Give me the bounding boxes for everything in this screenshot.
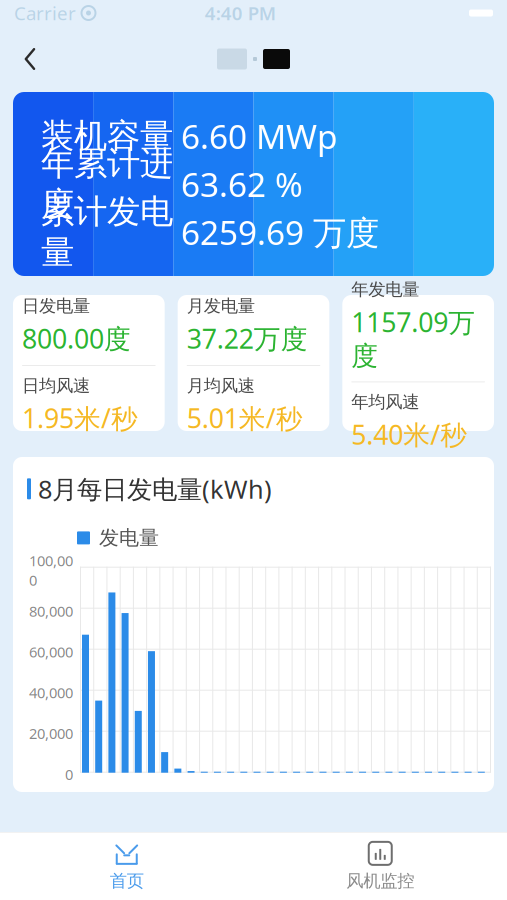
staticText: 100,000 xyxy=(29,551,73,590)
staticText: 1157.09万度 xyxy=(351,304,475,372)
staticText: 80,000 xyxy=(29,601,73,621)
staticText: 6259.69 万度 xyxy=(181,210,379,254)
staticText: 40,000 xyxy=(29,683,73,702)
staticText: 60,000 xyxy=(29,642,73,662)
staticText: 风机监控 xyxy=(346,870,414,892)
staticText: 20,000 xyxy=(29,724,73,743)
staticText: 发电量 xyxy=(99,526,159,550)
button[interactable]: 风机监控 xyxy=(253,832,507,900)
button[interactable]: 月发电量 xyxy=(178,295,329,431)
staticText: 累计发电量 xyxy=(41,191,173,273)
staticText: 年发电量 xyxy=(351,279,419,300)
staticText: 5.01米/秒 xyxy=(187,400,303,436)
staticText: 首页 xyxy=(110,870,144,892)
staticText: 1.95米/秒 xyxy=(22,400,138,436)
staticText: Carrier xyxy=(14,1,76,25)
staticText: 日均风速 xyxy=(22,375,90,396)
staticText: 8月每日发电量(kWh) xyxy=(38,472,272,506)
staticText: 4:40 PM xyxy=(205,1,276,25)
staticText: 800.00度 xyxy=(22,321,131,356)
staticText: 月发电量 xyxy=(187,295,255,317)
staticText: 37.22万度 xyxy=(187,321,308,356)
staticText: 月均风速 xyxy=(187,375,255,396)
button[interactable]: 日发电量 xyxy=(13,295,165,431)
button[interactable]: Back xyxy=(8,37,52,81)
button[interactable]: 首页 xyxy=(0,832,253,900)
staticText: 日发电量 xyxy=(22,295,90,317)
button[interactable]: 年发电量 xyxy=(342,295,494,431)
staticText: 0 xyxy=(65,764,73,784)
staticText: 装机容量 xyxy=(41,115,173,156)
staticText: 5.40米/秒 xyxy=(351,417,467,452)
staticText: 年累计进度 xyxy=(41,143,173,225)
staticText: 63.62 % xyxy=(181,162,303,206)
staticText: 年均风速 xyxy=(351,391,419,413)
staticText: 6.60 MWp xyxy=(181,114,338,158)
